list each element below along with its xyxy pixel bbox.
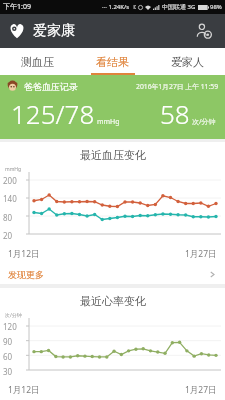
staticText: mmHg <box>5 166 22 173</box>
staticText: 中国联通 3G <box>162 3 196 11</box>
staticText: mmHg <box>97 117 120 127</box>
staticText: 看结果 <box>96 55 129 69</box>
staticText: 爱家人 <box>171 55 204 69</box>
staticText: 1月12日 <box>8 384 40 396</box>
button[interactable]: 爱家人 <box>150 48 225 75</box>
staticText: 最近心率变化 <box>80 294 146 308</box>
staticText: 90 <box>3 336 13 347</box>
staticText: 最近血压变化 <box>80 148 146 162</box>
button[interactable]: 爸爸血压记录 <box>0 75 225 139</box>
staticText: 1月27日 <box>185 248 217 260</box>
staticText: 80 <box>3 212 13 223</box>
staticText: 20 <box>3 230 13 241</box>
staticText: 30 <box>3 366 13 377</box>
button[interactable]: 发现更多 <box>0 264 225 284</box>
staticText: 120 <box>3 321 17 332</box>
staticText: 60 <box>3 351 13 362</box>
staticText: 次/分钟 <box>192 117 216 127</box>
staticText: 次/分钟 <box>5 312 22 319</box>
staticText: 200 <box>3 175 17 186</box>
staticText: 发现更多 <box>8 269 44 280</box>
staticText: 下午1:09 <box>3 2 31 12</box>
staticText: ··· 1.24K/s <box>102 3 130 11</box>
staticText: 1月27日 <box>185 384 217 396</box>
staticText: 爸爸血压记录 <box>24 81 78 92</box>
staticText: 爱家康 <box>33 22 75 40</box>
button[interactable]: 看结果 <box>75 48 150 75</box>
staticText: 98% <box>210 3 222 11</box>
staticText: 1月12日 <box>8 248 40 260</box>
staticText: 2016年1月27日 上午 11:59 <box>136 82 219 91</box>
button[interactable]: 测血压 <box>0 48 75 75</box>
staticText: 58 <box>160 96 190 131</box>
staticText: 140 <box>3 193 17 204</box>
staticText: 125/78 <box>11 96 95 131</box>
button[interactable]: Account settings <box>190 17 218 45</box>
staticText: 测血压 <box>21 55 54 69</box>
